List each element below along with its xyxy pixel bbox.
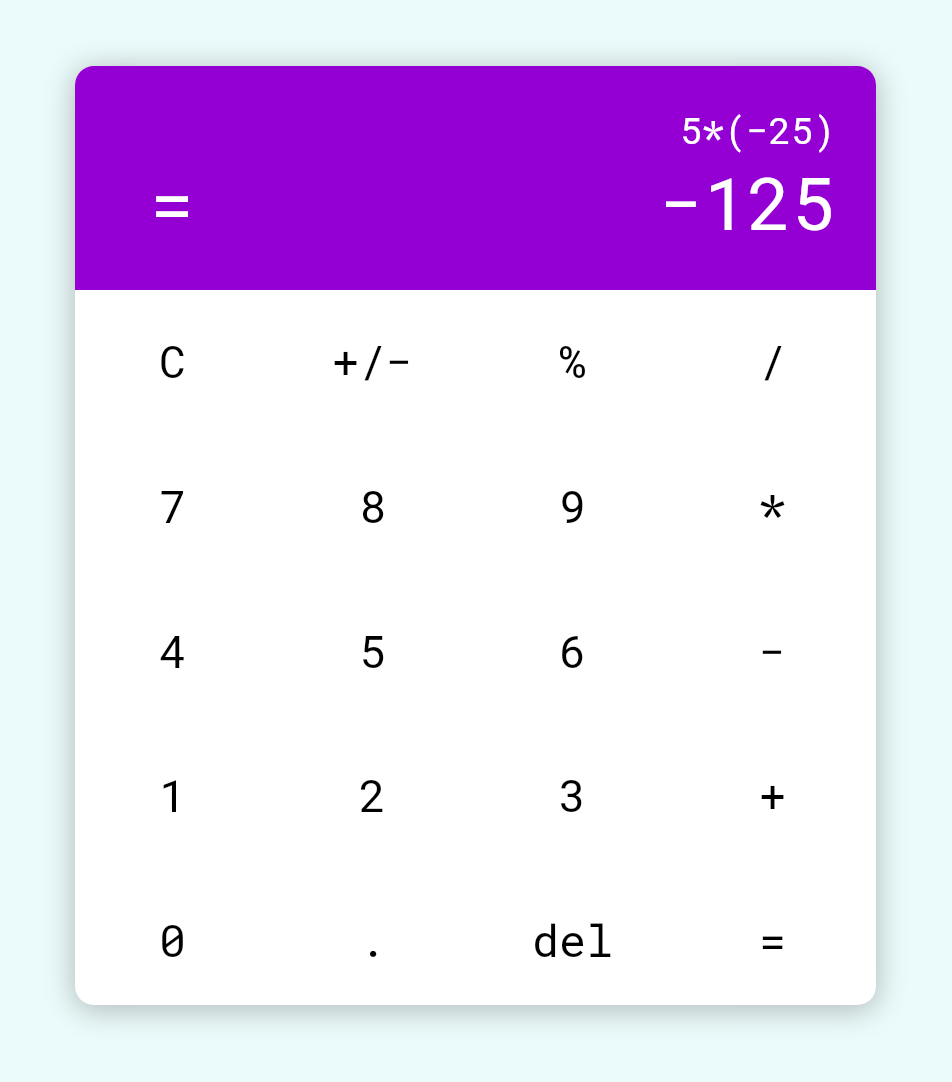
button[interactable]: 7 — [75, 433, 273, 578]
staticText: C — [159, 331, 187, 390]
button[interactable]: 0 — [75, 867, 273, 1005]
staticText: 5 — [359, 621, 387, 680]
staticText: del — [532, 910, 614, 969]
button[interactable]: . — [273, 867, 473, 1005]
button[interactable]: − — [673, 578, 873, 723]
button[interactable]: 9 — [473, 433, 673, 578]
staticText: 8 — [359, 476, 387, 535]
staticText: 9 — [559, 476, 587, 535]
staticText: 2 — [359, 765, 387, 824]
button[interactable]: + — [673, 722, 873, 867]
staticText: 6 — [559, 621, 587, 680]
staticText: = — [150, 154, 194, 250]
button[interactable]: 4 — [75, 578, 273, 723]
button[interactable]: 8 — [273, 433, 473, 578]
staticText: 7 — [159, 476, 187, 535]
staticText: * — [759, 476, 787, 535]
button[interactable]: 1 — [75, 722, 273, 867]
staticText: 4 — [159, 621, 187, 680]
button[interactable]: = — [673, 867, 873, 1005]
staticText: 3 — [559, 765, 587, 824]
staticText: −125 — [660, 154, 836, 250]
staticText: 5*(−25) — [680, 105, 836, 155]
button[interactable]: 5 — [273, 578, 473, 723]
button[interactable]: 2 — [273, 722, 473, 867]
staticText: 1 — [159, 765, 187, 824]
staticText: % — [559, 331, 587, 390]
staticText: + — [759, 765, 787, 824]
staticText: = — [759, 910, 787, 969]
staticText: / — [759, 331, 787, 390]
button[interactable]: C — [75, 288, 273, 433]
staticText: 0 — [159, 910, 187, 969]
button[interactable]: 6 — [473, 578, 673, 723]
staticText: − — [759, 621, 787, 680]
staticText: . — [359, 910, 387, 969]
button[interactable]: +/− — [273, 288, 473, 433]
button[interactable]: % — [473, 288, 673, 433]
button[interactable]: / — [673, 288, 873, 433]
staticText: +/− — [332, 331, 414, 390]
button[interactable]: 3 — [473, 722, 673, 867]
button[interactable]: del — [473, 867, 673, 1005]
button[interactable]: * — [673, 433, 873, 578]
